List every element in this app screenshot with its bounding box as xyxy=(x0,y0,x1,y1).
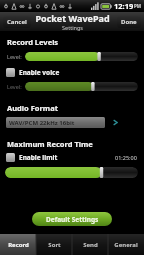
button[interactable]: General xyxy=(108,234,144,255)
button[interactable]: Default Settings xyxy=(32,212,112,226)
button[interactable] xyxy=(25,52,138,61)
staticText: Default Settings xyxy=(46,215,99,224)
staticText: Level: xyxy=(7,83,22,90)
staticText: Level: xyxy=(7,53,22,60)
staticText: PM xyxy=(134,3,142,9)
staticText: Cancel xyxy=(7,18,27,26)
staticText: Settings xyxy=(62,24,83,31)
button[interactable]: Checkbox xyxy=(6,68,15,77)
button[interactable]: Send xyxy=(72,234,108,255)
staticText: Audio Format xyxy=(7,103,58,113)
staticText: 12:19 xyxy=(114,1,134,11)
staticText: Maximum Record Time xyxy=(7,139,93,149)
staticText: Record xyxy=(8,241,29,249)
button[interactable]: More audio formats xyxy=(110,117,121,128)
staticText: 01:25:00 xyxy=(115,154,137,161)
button[interactable] xyxy=(25,82,138,91)
button[interactable]: Checkbox xyxy=(6,153,15,162)
button[interactable]: Sort xyxy=(36,234,72,255)
staticText: Sort xyxy=(48,241,61,249)
button[interactable]: Record xyxy=(0,234,36,255)
staticText: Send xyxy=(83,241,98,249)
button[interactable] xyxy=(5,167,138,178)
staticText: Done xyxy=(121,18,137,26)
button[interactable]: WAV/PCM 22kHz 16bit xyxy=(6,117,105,128)
staticText: Record Levels xyxy=(7,37,59,47)
staticText: Enable limit xyxy=(19,153,58,162)
staticText: Pocket WavePad xyxy=(35,12,110,24)
button[interactable]: Done xyxy=(117,16,141,28)
staticText: General xyxy=(114,241,138,249)
staticText: Enable voice xyxy=(19,68,60,77)
button[interactable]: Cancel xyxy=(3,16,31,28)
staticText: WAV/PCM 22kHz 16bit xyxy=(9,119,75,127)
